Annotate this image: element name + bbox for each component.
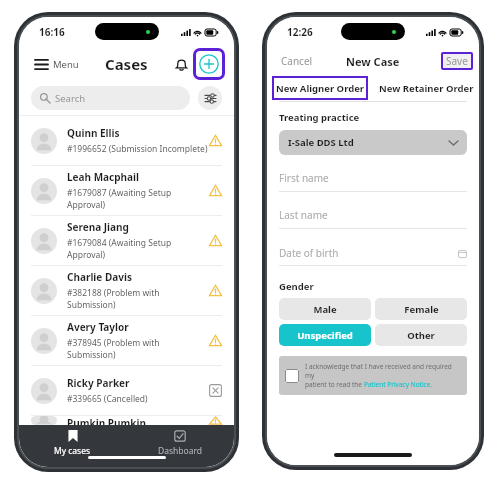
staticText: My cases: [54, 445, 91, 457]
button[interactable]: Warning: [209, 334, 222, 347]
staticText: Female: [404, 303, 439, 316]
button[interactable]: Search: [31, 86, 190, 110]
button[interactable]: Cancelled: [209, 384, 222, 397]
staticText: Search: [55, 92, 86, 105]
staticText: #382188 (Problem with Submission): [67, 287, 209, 311]
button[interactable]: Female: [375, 298, 467, 320]
staticText: Dashboard: [158, 445, 203, 457]
staticText: New Aligner Order: [276, 82, 365, 95]
staticText: #1679084 (Awaiting Setup Approval): [67, 237, 209, 261]
button[interactable]: Leah Macphail: [19, 166, 234, 215]
button[interactable]: First name: [279, 155, 467, 192]
staticText: Charlie Davis: [67, 270, 132, 284]
other: Menu: [35, 59, 48, 70]
staticText: Gender: [279, 280, 314, 293]
button[interactable]: Cancel: [267, 54, 313, 68]
staticText: First name: [279, 171, 467, 185]
button[interactable]: Avery Taylor: [19, 316, 234, 365]
staticText: Quinn Ellis: [67, 126, 120, 140]
staticText: Other: [407, 329, 435, 342]
button[interactable]: Unspecified: [279, 324, 371, 346]
button[interactable]: Serena Jiang: [19, 216, 234, 265]
staticText: Cases: [105, 54, 148, 74]
button[interactable]: Filter: [198, 86, 222, 110]
button[interactable]: Last name: [279, 192, 467, 229]
button[interactable]: Date of birth: [279, 229, 467, 266]
button[interactable]: Charlie Davis: [19, 266, 234, 315]
button[interactable]: My cases: [19, 425, 126, 457]
staticText: #1679087 (Awaiting Setup Approval): [67, 187, 209, 211]
button[interactable]: I acknowledge that I have received and r…: [279, 356, 467, 395]
staticText: New Retainer Order: [379, 82, 474, 95]
button[interactable]: New Aligner Order: [272, 76, 368, 100]
button[interactable]: Quinn Ellis: [19, 116, 234, 165]
staticText: Last name: [279, 208, 467, 222]
staticText: Serena Jiang: [67, 220, 129, 234]
button[interactable]: Menu: [33, 56, 81, 73]
button[interactable]: Patient Privacy Notice.: [364, 380, 433, 389]
staticText: Avery Taylor: [67, 320, 129, 334]
staticText: New Case: [346, 54, 400, 69]
staticText: #1996652 (Submission Incomplete): [67, 143, 208, 155]
button[interactable]: Warning: [209, 184, 222, 197]
staticText: 16:16: [39, 25, 65, 39]
button[interactable]: Warning: [209, 284, 222, 297]
staticText: Treating practice: [279, 111, 360, 124]
staticText: Save: [446, 54, 468, 68]
button[interactable]: Ricky Parker: [19, 366, 234, 415]
button[interactable]: Warning: [209, 416, 222, 425]
button[interactable]: Other: [375, 324, 467, 346]
button[interactable]: Male: [279, 298, 371, 320]
staticText: Leah Macphail: [67, 170, 140, 184]
staticText: Unspecified: [297, 329, 353, 342]
staticText: #339665 (Cancelled): [67, 393, 148, 405]
staticText: #378945 (Problem with Submission): [67, 337, 209, 361]
staticText: Male: [313, 303, 337, 316]
staticText: 12:26: [287, 25, 313, 39]
staticText: I acknowledge that I have received and r…: [305, 362, 461, 380]
button[interactable]: New Retainer Order: [373, 82, 479, 95]
staticText: Ricky Parker: [67, 376, 130, 390]
staticText: I-Sale DDS Ltd: [288, 136, 449, 149]
staticText: Menu: [53, 58, 79, 71]
button[interactable]: Warning: [209, 134, 222, 147]
button[interactable]: Warning: [209, 234, 222, 247]
button[interactable]: I-Sale DDS Ltd: [279, 130, 467, 155]
button[interactable]: Dashboard: [126, 425, 234, 457]
button[interactable]: Save: [443, 54, 471, 68]
button[interactable]: Notifications: [169, 52, 193, 76]
staticText: Pumkin Pumkin: [67, 416, 146, 425]
button[interactable]: Add case: [196, 51, 222, 77]
button[interactable]: Pumkin Pumkin: [19, 416, 234, 425]
staticText: patient to read the: [305, 380, 364, 389]
staticText: Date of birth: [279, 246, 458, 260]
